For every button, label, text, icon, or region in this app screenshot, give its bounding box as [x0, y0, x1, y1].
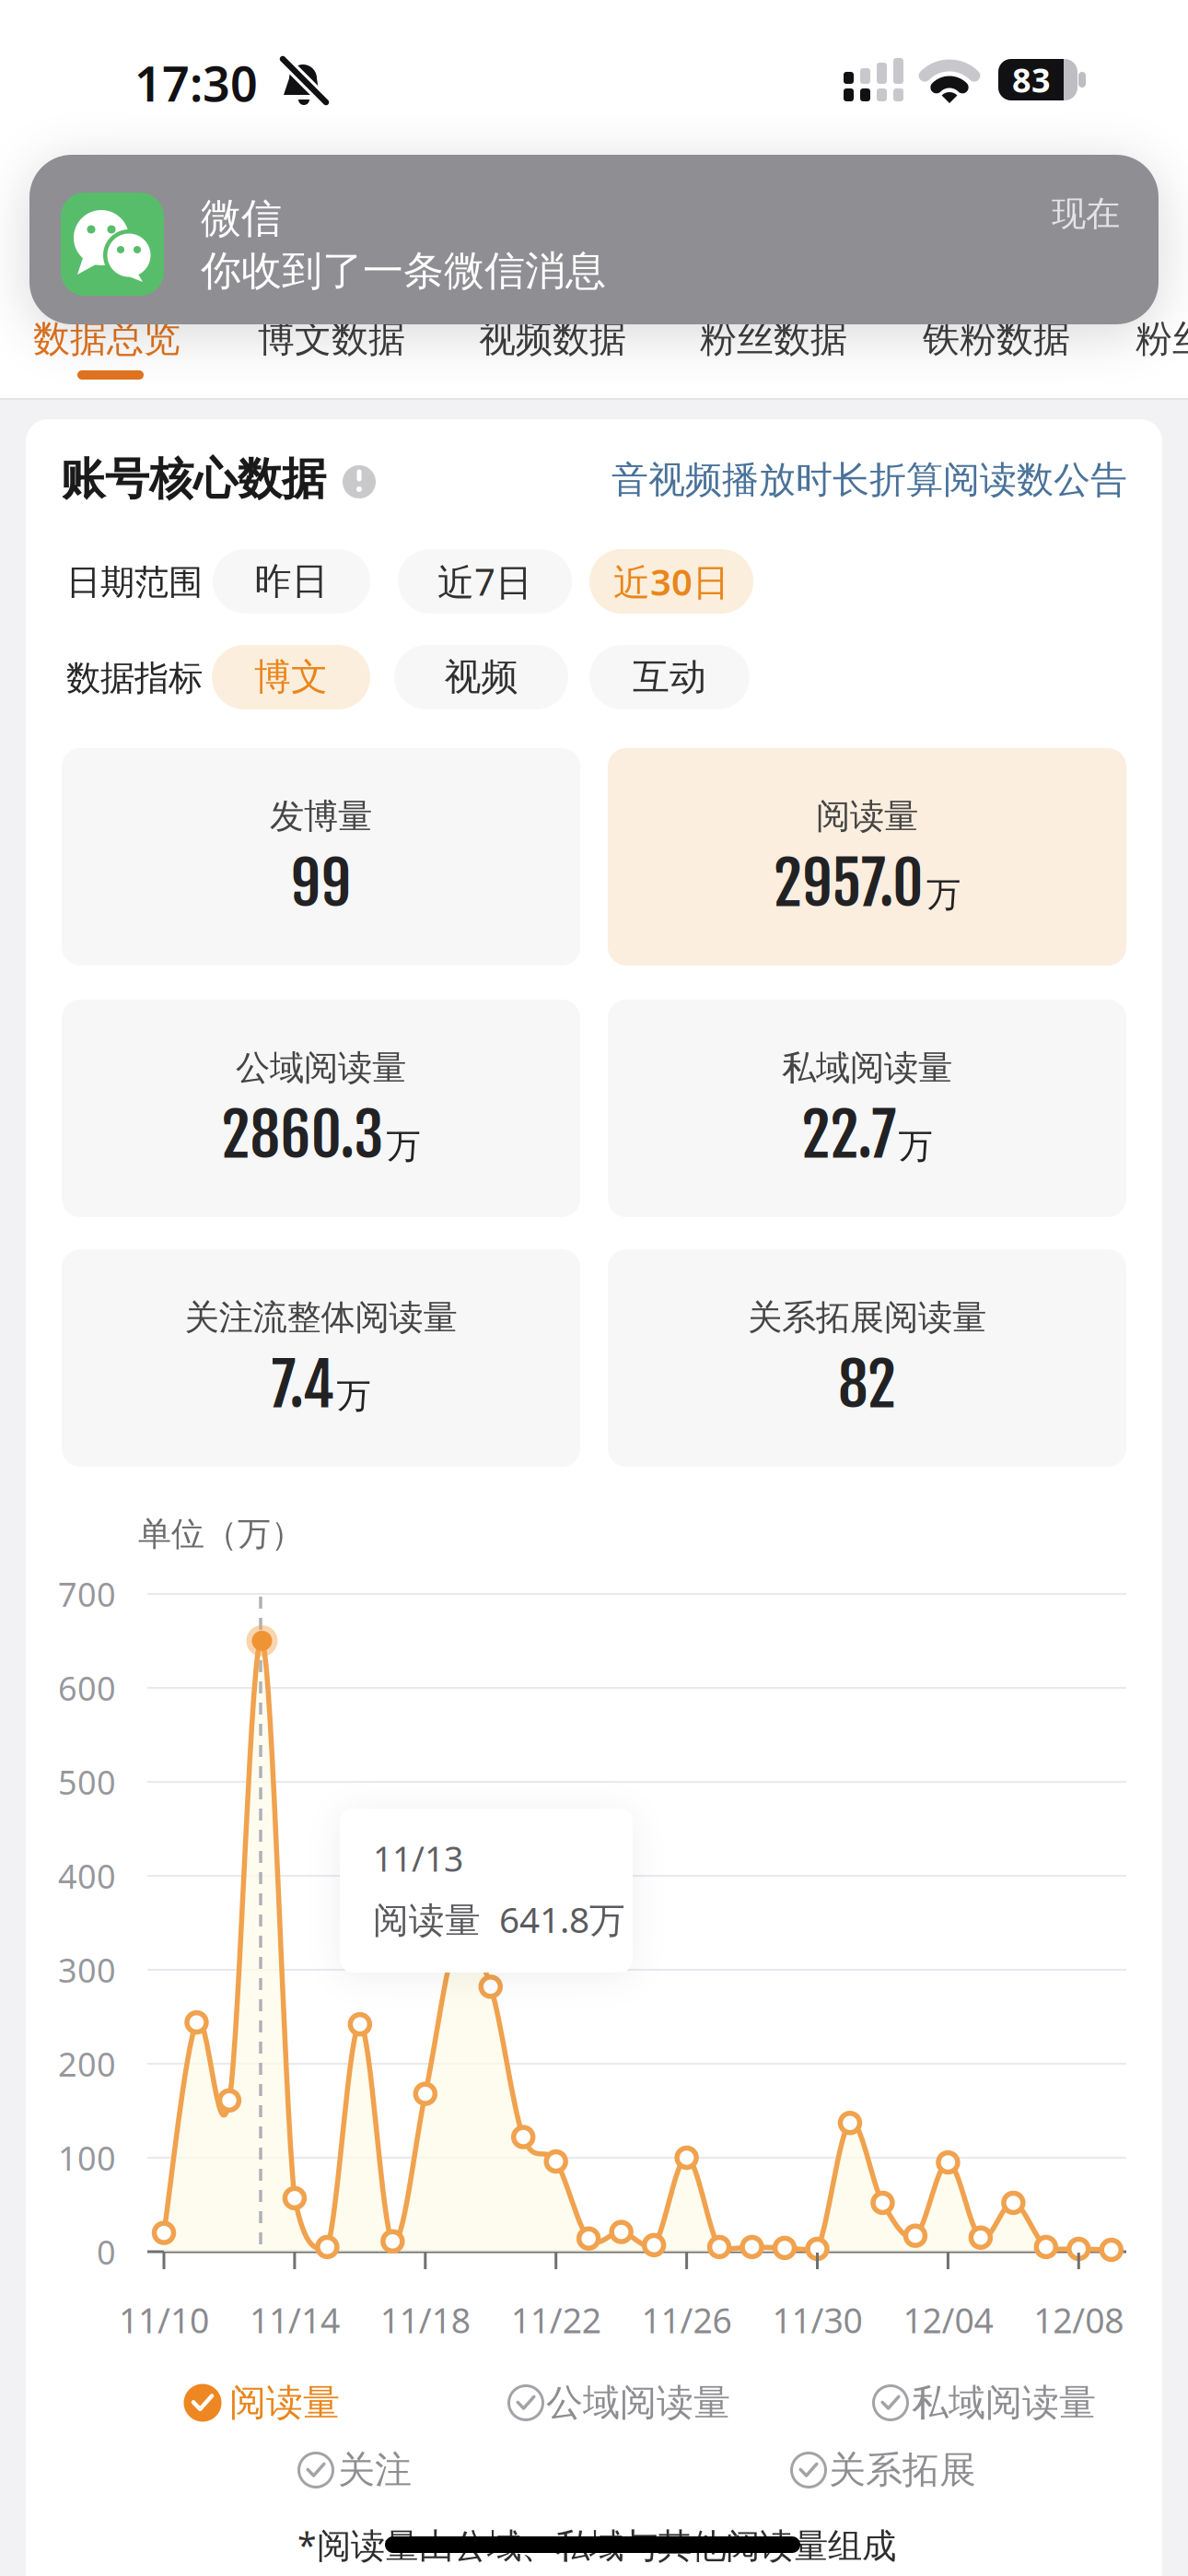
- staticText: 数据总览: [33, 316, 181, 362]
- button[interactable]: 近7日: [398, 549, 572, 614]
- staticText: 600: [58, 1666, 116, 1710]
- button[interactable]: 关系拓展阅读量 82: [608, 1249, 1126, 1467]
- staticText: 你收到了一条微信消息: [201, 246, 606, 296]
- staticText: 公域阅读量: [236, 1047, 406, 1089]
- button[interactable]: 阅读量 2957.0万: [608, 748, 1126, 966]
- staticText: 账号核心数据: [61, 452, 326, 506]
- staticText: 近30日: [613, 557, 729, 606]
- staticText: 17:30: [134, 51, 258, 115]
- staticText: 100: [58, 2136, 116, 2180]
- staticText: 博文数据: [258, 316, 405, 362]
- staticText: 视频数据: [479, 316, 626, 362]
- staticText: *阅读量由公域、私域与其他阅读量组成: [297, 2522, 896, 2568]
- staticText: 万: [386, 1125, 420, 1167]
- staticText: 11/30: [772, 2297, 862, 2343]
- staticText: 私域阅读量: [912, 2380, 1096, 2425]
- button[interactable]: 近30日: [589, 549, 753, 614]
- button[interactable]: 私域阅读量 22.7万: [608, 1000, 1126, 1217]
- staticText: 单位（万）: [138, 1514, 304, 1554]
- button[interactable]: 粉丝数据: [0, 0, 1188, 2576]
- staticText: 2957.0: [774, 846, 924, 921]
- button[interactable]: 公域阅读量: [0, 0, 1188, 2576]
- button[interactable]: 博文数据: [0, 0, 1188, 2576]
- button[interactable]: 关注流整体阅读量 7.4万: [62, 1249, 580, 1467]
- staticText: 阅读量: [816, 795, 918, 837]
- staticText: 数据指标: [66, 657, 203, 699]
- staticText: 万: [926, 874, 961, 916]
- staticText: 关注: [338, 2447, 412, 2493]
- button[interactable]: 阅读量: [0, 0, 1188, 2576]
- button[interactable]: 关注: [0, 0, 1188, 2576]
- staticText: 2860.3: [221, 1098, 384, 1173]
- staticText: 400: [58, 1854, 116, 1898]
- staticText: 私域阅读量: [782, 1047, 952, 1089]
- staticText: 11/18: [380, 2297, 470, 2343]
- staticText: 83: [1012, 58, 1051, 102]
- staticText: 铁粉数据: [923, 316, 1070, 362]
- staticText: 万: [898, 1125, 932, 1167]
- staticText: 阅读量 641.8万: [373, 1895, 625, 1943]
- staticText: 11/22: [511, 2297, 601, 2343]
- button[interactable]: 音视频播放时长折算阅读数公告: [0, 0, 1188, 2576]
- staticText: 700: [58, 1572, 116, 1616]
- staticText: 微信: [201, 193, 282, 243]
- staticText: 视频: [444, 655, 518, 700]
- staticText: 互动: [633, 655, 706, 700]
- button[interactable]: 博文: [212, 645, 370, 709]
- button[interactable]: 公域阅读量 2860.3万: [62, 1000, 580, 1217]
- staticText: 博文: [254, 655, 328, 700]
- staticText: 12/04: [903, 2297, 993, 2343]
- staticText: 0: [97, 2230, 116, 2274]
- staticText: 82: [838, 1347, 896, 1422]
- staticText: 关系拓展: [829, 2447, 976, 2493]
- staticText: 7.4: [271, 1347, 334, 1422]
- staticText: 发博量: [270, 795, 372, 837]
- staticText: 现在: [1052, 193, 1120, 235]
- button[interactable]: 数据总览: [0, 0, 1188, 2576]
- staticText: 22.7: [802, 1098, 896, 1173]
- button[interactable]: 视频数据: [0, 0, 1188, 2576]
- staticText: 关注流整体阅读量: [185, 1296, 457, 1339]
- staticText: 11/10: [119, 2297, 209, 2343]
- staticText: 公域阅读量: [546, 2380, 730, 2425]
- staticText: 关系拓展阅读量: [748, 1296, 986, 1339]
- button[interactable]: 互动: [589, 645, 750, 709]
- staticText: 日期范围: [66, 561, 203, 603]
- staticText: 99: [291, 846, 351, 921]
- button[interactable]: 昨日: [213, 549, 370, 614]
- button[interactable]: 发博量 99: [62, 748, 580, 966]
- staticText: 300: [58, 1948, 116, 1992]
- button[interactable]: 微信通知：你收到了一条微信消息: [29, 155, 1159, 324]
- staticText: 11/26: [642, 2297, 732, 2343]
- button[interactable]: 关系拓展: [0, 0, 1188, 2576]
- staticText: 12/08: [1034, 2297, 1124, 2343]
- staticText: 万: [337, 1375, 371, 1417]
- button[interactable]: 视频: [394, 645, 568, 709]
- staticText: 11/13: [373, 1835, 463, 1881]
- staticText: 500: [58, 1760, 116, 1804]
- staticText: 昨日: [255, 559, 328, 604]
- staticText: 粉丝数据: [700, 316, 847, 362]
- button[interactable]: 铁粉数据: [0, 0, 1188, 2576]
- staticText: 近7日: [437, 557, 532, 606]
- staticText: 11/14: [249, 2297, 340, 2343]
- button[interactable]: 粉丝数据: [0, 0, 1188, 2576]
- staticText: 音视频播放时长折算阅读数公告: [611, 457, 1127, 503]
- staticText: 200: [58, 2042, 116, 2086]
- staticText: 粉丝数据: [1136, 316, 1188, 362]
- button[interactable]: 私域阅读量: [0, 0, 1188, 2576]
- staticText: 阅读量: [229, 2380, 340, 2425]
